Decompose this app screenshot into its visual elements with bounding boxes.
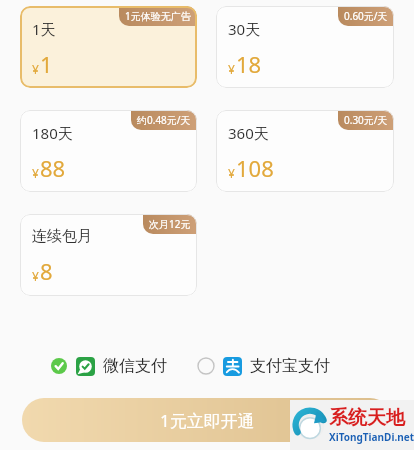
staticText: 30天	[228, 19, 261, 39]
button[interactable]: 微信支付	[50, 356, 167, 376]
staticText: 次月12元	[149, 217, 191, 231]
button[interactable]: 次月12元	[20, 214, 197, 296]
staticText: ¥	[228, 61, 235, 77]
staticText: 1	[40, 49, 53, 79]
staticText: 支付宝支付	[250, 356, 330, 376]
button[interactable]: 1元立即开通	[22, 398, 392, 442]
staticText: 8	[40, 256, 53, 286]
staticText: XiTongTianDi.net	[329, 430, 414, 444]
staticText: 系统天地	[329, 406, 405, 430]
button[interactable]: 1元体验无广告	[20, 6, 197, 88]
button[interactable]: 约0.48元/天	[20, 110, 197, 192]
staticText: 微信支付	[103, 356, 167, 376]
staticText: 180天	[32, 123, 73, 143]
staticText: 360天	[228, 123, 269, 143]
staticText: 108	[236, 153, 274, 183]
staticText: 约0.48元/天	[137, 113, 191, 127]
staticText: 88	[40, 153, 66, 183]
staticText: 18	[236, 49, 262, 79]
staticText: ¥	[32, 61, 39, 77]
button[interactable]: 0.60元/天	[216, 6, 394, 88]
staticText: 0.60元/天	[344, 9, 388, 23]
staticText: 1元立即开通	[160, 409, 255, 432]
staticText: ¥	[228, 165, 235, 181]
staticText: 连续包月	[32, 227, 92, 246]
staticText: 1元体验无广告	[125, 9, 191, 23]
staticText: ¥	[32, 268, 39, 284]
button[interactable]: 0.30元/天	[216, 110, 394, 192]
staticText: 1天	[32, 19, 56, 39]
button[interactable]: 支付宝支付	[197, 356, 330, 376]
staticText: 0.30元/天	[344, 113, 388, 127]
staticText: ¥	[32, 165, 39, 181]
